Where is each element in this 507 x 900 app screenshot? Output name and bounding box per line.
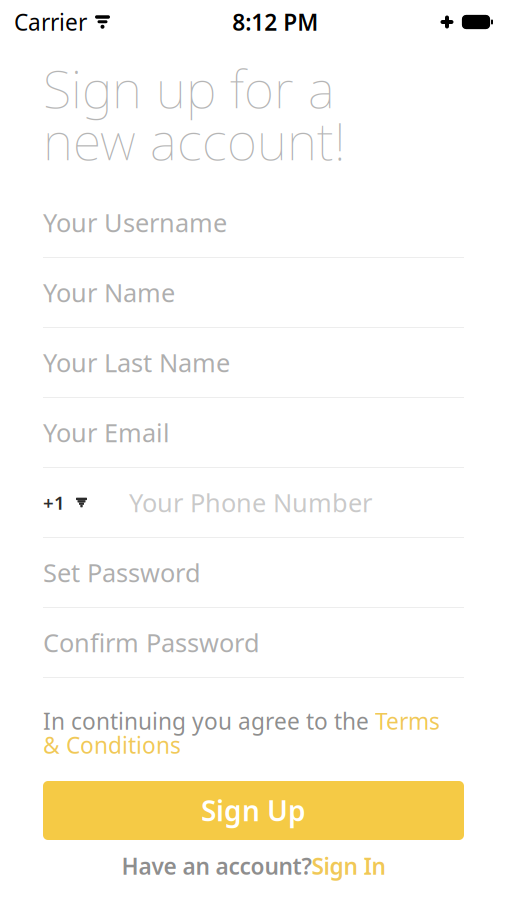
staticText: Sign In <box>311 851 385 881</box>
staticText: Confirm Password <box>43 626 260 659</box>
button[interactable]: Your Name <box>43 258 464 328</box>
button[interactable]: Your Last Name <box>43 328 464 398</box>
button[interactable]: Country code +1, Your Phone Number <box>43 468 464 538</box>
staticText: +1 <box>43 490 65 515</box>
button[interactable]: Confirm Password <box>43 608 464 678</box>
staticText: Carrier <box>14 7 87 37</box>
staticText: Terms <box>375 706 440 736</box>
staticText: 8:12 PM <box>232 7 318 37</box>
button[interactable]: Set Password <box>43 538 464 608</box>
staticText: Have an account? <box>121 851 311 881</box>
staticText: Set Password <box>43 556 201 589</box>
button[interactable]: & Conditions <box>43 733 464 757</box>
button[interactable]: Terms <box>375 706 440 736</box>
staticText: Your Email <box>43 416 170 449</box>
button[interactable]: Your Username <box>43 188 464 258</box>
staticText: Your Name <box>43 276 175 309</box>
staticText: new account! <box>43 105 346 175</box>
button[interactable]: Sign Up <box>43 781 464 840</box>
staticText: Your Phone Number <box>129 486 372 519</box>
staticText: & Conditions <box>43 730 181 760</box>
staticText: Your Username <box>43 206 227 239</box>
button[interactable]: Your Email <box>43 398 464 468</box>
button[interactable]: Have an account? <box>0 846 507 886</box>
staticText: Your Last Name <box>43 346 230 379</box>
staticText: Sign Up <box>201 792 306 829</box>
staticText: Sign up for a <box>43 53 335 123</box>
staticText: In continuing you agree to the <box>43 706 375 736</box>
